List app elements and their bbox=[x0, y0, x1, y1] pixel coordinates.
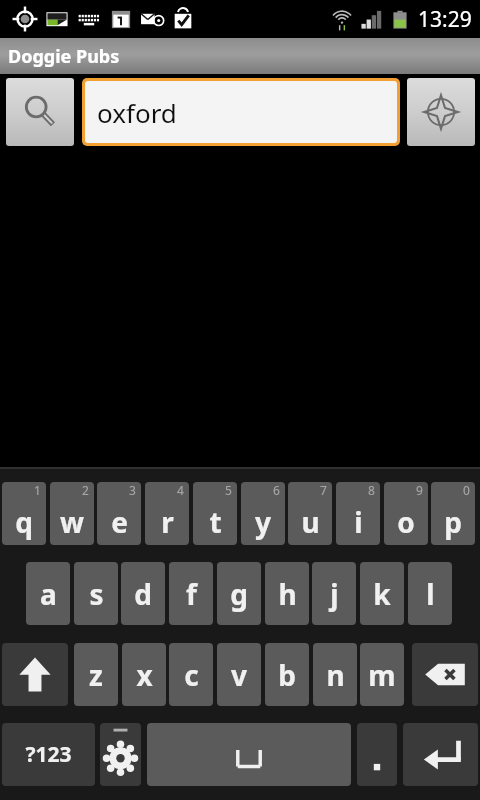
button[interactable]: My location bbox=[407, 78, 475, 146]
button[interactable]: Enter bbox=[403, 723, 478, 786]
staticText: 0 bbox=[463, 482, 470, 498]
button[interactable]: s bbox=[74, 562, 118, 625]
staticText: 1 bbox=[34, 482, 41, 498]
button[interactable]: 0 bbox=[431, 482, 475, 545]
staticText: r bbox=[161, 503, 174, 541]
staticText: b bbox=[278, 656, 296, 694]
staticText: f bbox=[186, 575, 197, 613]
button[interactable]: oxford bbox=[85, 81, 397, 143]
button[interactable]: k bbox=[360, 562, 404, 625]
button[interactable]: a bbox=[26, 562, 70, 625]
button[interactable]: b bbox=[265, 643, 309, 706]
button[interactable]: 3 bbox=[97, 482, 141, 545]
staticText: e bbox=[111, 503, 128, 541]
button[interactable]: n bbox=[313, 643, 357, 706]
staticText: w bbox=[60, 503, 84, 541]
staticText: 5 bbox=[225, 482, 232, 498]
staticText: p bbox=[444, 503, 462, 541]
button[interactable]: Shift bbox=[2, 643, 68, 706]
button[interactable]: g bbox=[217, 562, 261, 625]
staticText: 9 bbox=[416, 482, 423, 498]
staticText: j bbox=[330, 575, 339, 613]
staticText: s bbox=[89, 575, 104, 613]
button[interactable]: 2 bbox=[50, 482, 94, 545]
button[interactable]: v bbox=[217, 643, 261, 706]
button[interactable]: 1 bbox=[2, 482, 46, 545]
staticText: q bbox=[15, 503, 33, 541]
staticText: g bbox=[230, 575, 248, 613]
staticText: n bbox=[326, 656, 345, 694]
button[interactable]: c bbox=[169, 643, 213, 706]
staticText: c bbox=[184, 656, 199, 694]
staticText: l bbox=[426, 575, 435, 613]
button[interactable]: 7 bbox=[288, 482, 332, 545]
staticText: ?123 bbox=[25, 740, 72, 769]
button[interactable]: z bbox=[74, 643, 118, 706]
staticText: y bbox=[255, 503, 271, 541]
button[interactable]: h bbox=[265, 562, 309, 625]
button[interactable]: Delete bbox=[412, 643, 478, 706]
button[interactable]: 9 bbox=[384, 482, 428, 545]
staticText: k bbox=[373, 575, 391, 613]
staticText: a bbox=[40, 575, 57, 613]
staticText: 3 bbox=[129, 482, 136, 498]
staticText: 2 bbox=[82, 482, 89, 498]
button[interactable]: l bbox=[408, 562, 452, 625]
staticText: Doggie Pubs bbox=[8, 44, 120, 69]
staticText: oxford bbox=[97, 95, 177, 130]
staticText: 4 bbox=[177, 482, 184, 498]
staticText: v bbox=[231, 656, 247, 694]
staticText: o bbox=[397, 503, 415, 541]
button[interactable]: j bbox=[312, 562, 356, 625]
staticText: d bbox=[134, 575, 152, 613]
button[interactable]: Settings bbox=[100, 723, 141, 786]
button[interactable]: Period bbox=[357, 723, 397, 786]
staticText: x bbox=[136, 656, 153, 694]
staticText: 8 bbox=[368, 482, 375, 498]
button[interactable]: m bbox=[360, 643, 404, 706]
staticText: 6 bbox=[273, 482, 280, 498]
button[interactable]: d bbox=[121, 562, 165, 625]
button[interactable]: Search bbox=[6, 78, 74, 146]
staticText: 13:29 bbox=[418, 5, 472, 34]
button[interactable]: x bbox=[122, 643, 166, 706]
button[interactable]: f bbox=[169, 562, 213, 625]
button[interactable]: 6 bbox=[241, 482, 285, 545]
button[interactable]: 5 bbox=[193, 482, 237, 545]
button[interactable]: 4 bbox=[145, 482, 189, 545]
staticText: z bbox=[89, 656, 103, 694]
staticText: i bbox=[354, 503, 363, 541]
button[interactable]: ?123 bbox=[2, 723, 95, 786]
staticText: m bbox=[368, 656, 396, 694]
staticText: 7 bbox=[320, 482, 327, 498]
button[interactable]: Space bbox=[147, 723, 351, 786]
staticText: t bbox=[209, 503, 222, 541]
staticText: u bbox=[301, 503, 320, 541]
button[interactable]: 8 bbox=[336, 482, 380, 545]
staticText: h bbox=[278, 575, 297, 613]
